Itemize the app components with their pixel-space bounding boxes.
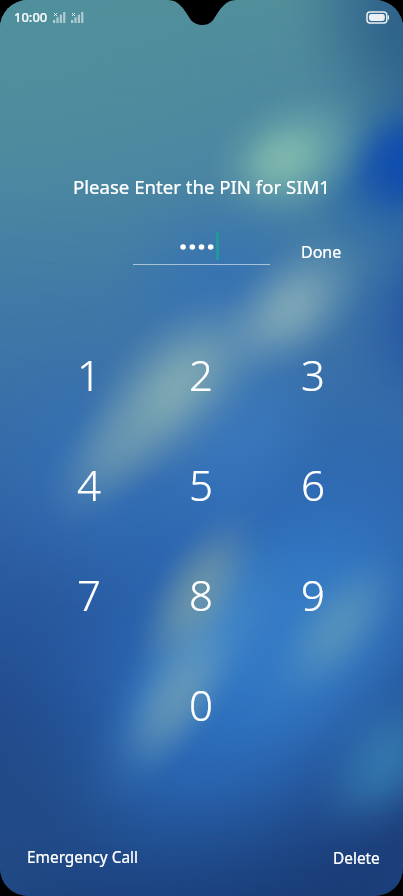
staticText: Done: [301, 241, 342, 263]
button[interactable]: 3: [273, 339, 353, 409]
staticText: 8: [189, 566, 213, 623]
button[interactable]: 2: [161, 339, 241, 409]
button[interactable]: 4: [49, 449, 129, 519]
staticText: 0: [189, 676, 213, 733]
staticText: 6: [301, 456, 325, 513]
button[interactable]: 8: [161, 559, 241, 629]
button[interactable]: 7: [49, 559, 129, 629]
button[interactable]: 9: [273, 559, 353, 629]
button[interactable]: Emergency Call: [15, 837, 151, 877]
button[interactable]: Delete: [320, 838, 392, 878]
staticText: 5: [189, 456, 213, 513]
staticText: 1: [77, 346, 101, 403]
staticText: Delete: [333, 848, 380, 869]
staticText: 7: [77, 566, 101, 623]
staticText: 2: [189, 346, 213, 403]
staticText: Emergency Call: [27, 847, 139, 868]
button[interactable]: 5: [161, 449, 241, 519]
staticText: 3: [301, 346, 325, 403]
staticText: 9: [301, 566, 325, 623]
staticText: 10:00: [14, 8, 48, 26]
button[interactable]: 6: [273, 449, 353, 519]
button[interactable]: 1: [49, 339, 129, 409]
button[interactable]: 0: [161, 669, 241, 739]
staticText: 4: [77, 456, 101, 513]
button[interactable]: Done: [286, 236, 356, 268]
staticText: Please Enter the PIN for SIM1: [73, 174, 330, 199]
